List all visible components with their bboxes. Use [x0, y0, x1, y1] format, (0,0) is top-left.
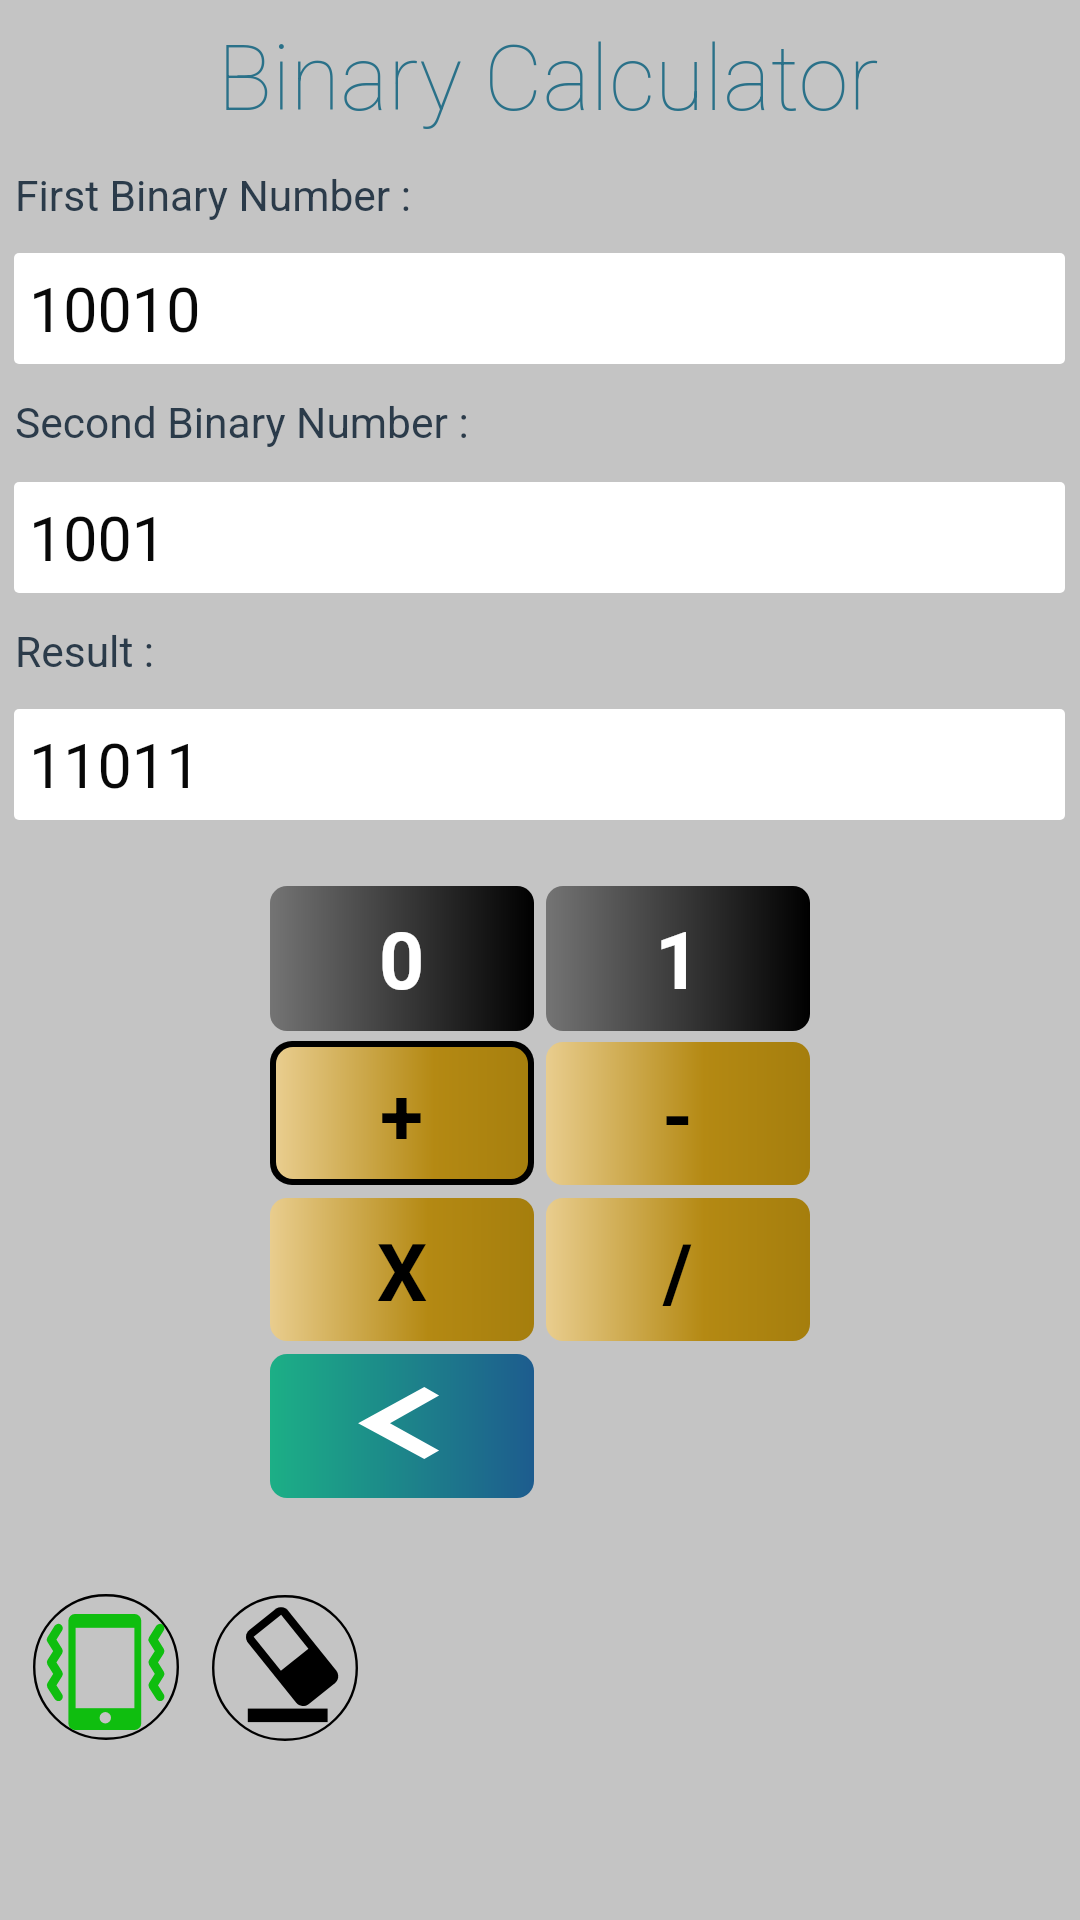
staticText: 11011	[29, 731, 201, 802]
button[interactable]: X	[270, 1198, 534, 1341]
staticText: /	[663, 1228, 693, 1321]
staticText: 0	[379, 916, 425, 1009]
staticText: 1	[655, 916, 701, 1009]
button[interactable]: 11011	[14, 709, 1065, 820]
button[interactable]: 1001	[14, 482, 1065, 593]
staticText: 1001	[29, 504, 167, 575]
button[interactable]: -	[546, 1042, 810, 1185]
staticText: Result :	[15, 628, 155, 678]
button[interactable]: 0	[270, 886, 534, 1031]
button[interactable]: +	[276, 1047, 528, 1179]
button[interactable]: Vibrate	[33, 1594, 179, 1740]
staticText: +	[380, 1072, 424, 1165]
staticText: -	[662, 1072, 694, 1165]
button[interactable]: /	[546, 1198, 810, 1341]
staticText: X	[377, 1228, 428, 1321]
staticText: Second Binary Number :	[15, 399, 469, 449]
button[interactable]: 10010	[14, 253, 1065, 364]
button[interactable]: Clear	[212, 1595, 358, 1741]
button[interactable]: Backspace	[270, 1354, 534, 1498]
staticText: Binary Calculator	[8, 26, 1080, 132]
staticText: 10010	[29, 275, 201, 346]
staticText: First Binary Number :	[15, 172, 412, 222]
button[interactable]: 1	[546, 886, 810, 1031]
